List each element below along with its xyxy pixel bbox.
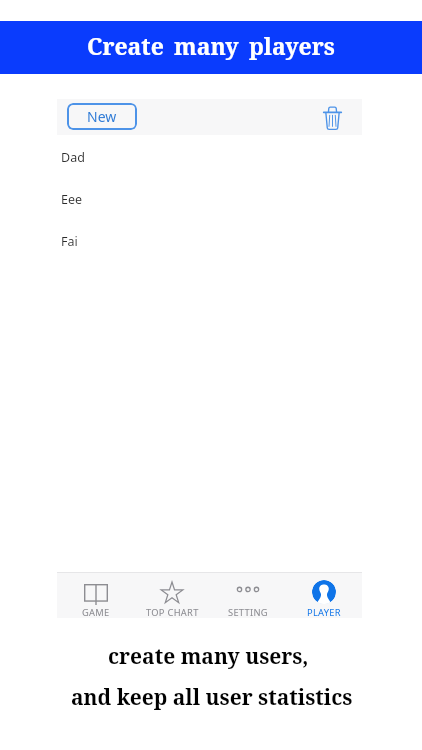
staticText: SETTING [228, 606, 268, 619]
button[interactable]: New [67, 103, 137, 130]
staticText: create many users, [108, 642, 309, 671]
button[interactable]: PLAYER [286, 572, 362, 618]
button[interactable]: TOP CHART [134, 572, 210, 618]
staticText: Dad [61, 149, 85, 166]
staticText: TOP CHART [146, 606, 199, 619]
staticText: many [174, 30, 239, 61]
staticText: New [87, 107, 117, 126]
button[interactable]: Dad [57, 135, 362, 177]
staticText: Fai [61, 233, 78, 250]
staticText: Create [87, 30, 164, 61]
staticText: Eee [61, 191, 83, 208]
button[interactable]: SETTING [210, 572, 286, 618]
button[interactable]: Delete [312, 99, 352, 135]
staticText: and keep all user statistics [71, 683, 353, 712]
button[interactable]: GAME [57, 572, 134, 618]
staticText: PLAYER [307, 606, 341, 619]
button[interactable]: Eee [57, 177, 362, 219]
staticText: players [249, 30, 335, 61]
button[interactable]: Fai [57, 219, 362, 261]
staticText: GAME [82, 606, 110, 619]
